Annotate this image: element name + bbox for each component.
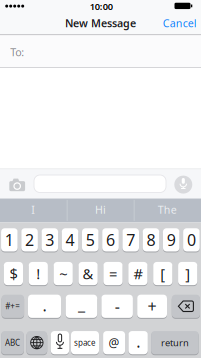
staticText: +	[148, 296, 157, 317]
button[interactable]: ABC	[1, 330, 24, 355]
button[interactable]: #	[128, 261, 147, 286]
staticText: return	[161, 336, 189, 349]
button[interactable]: 9	[163, 228, 179, 252]
staticText: I	[31, 202, 35, 217]
button[interactable]: 6	[102, 228, 119, 252]
button[interactable]: 0	[183, 228, 200, 252]
staticText: 8	[146, 229, 155, 250]
staticText: Cancel	[163, 16, 197, 30]
staticText: 0	[187, 229, 196, 250]
staticText: $	[9, 264, 17, 283]
button[interactable]: @	[103, 330, 125, 355]
staticText: .	[136, 331, 140, 352]
button[interactable]: 2	[21, 228, 38, 252]
staticText: &	[83, 264, 94, 283]
button[interactable]: Dictate	[51, 330, 69, 355]
button[interactable]: Next keyboard	[26, 330, 47, 355]
staticText: -	[115, 296, 120, 317]
button[interactable]: [	[153, 261, 172, 286]
staticText: Hi	[95, 202, 106, 217]
staticText: 4	[65, 229, 74, 250]
staticText: .	[42, 295, 46, 316]
button[interactable]: 4	[62, 228, 78, 252]
button[interactable]: 1	[1, 228, 18, 252]
button[interactable]: 3	[41, 228, 58, 252]
staticText: #	[133, 264, 142, 283]
staticText: [	[160, 264, 165, 283]
button[interactable]: Cancel	[163, 16, 197, 30]
button[interactable]: -	[101, 294, 133, 318]
button[interactable]: space	[71, 330, 99, 355]
staticText: New Message	[65, 16, 136, 30]
staticText: To:	[10, 45, 24, 59]
staticText: =	[109, 264, 117, 283]
staticText: ]	[185, 264, 190, 283]
button[interactable]: _	[66, 294, 97, 318]
staticText: 2	[25, 229, 34, 250]
staticText: 5	[86, 229, 95, 250]
button[interactable]: +	[137, 294, 167, 318]
staticText: 7	[126, 229, 135, 250]
staticText: The	[158, 202, 177, 217]
button[interactable]: .	[28, 294, 61, 318]
staticText: 6	[106, 229, 115, 250]
staticText: @	[109, 335, 120, 351]
staticText: 3	[45, 229, 54, 250]
button[interactable]: 8	[143, 228, 159, 252]
button[interactable]: Delete	[172, 294, 200, 318]
button[interactable]: I	[1, 198, 65, 221]
staticText: !	[36, 264, 40, 283]
button[interactable]: ~	[54, 261, 73, 286]
staticText: 9	[167, 229, 176, 250]
staticText: #+=	[5, 301, 20, 311]
button[interactable]: #+=	[2, 294, 24, 318]
button[interactable]: Hi	[68, 198, 132, 221]
staticText: 10:00	[90, 0, 113, 13]
button[interactable]: Record audio message	[174, 175, 193, 194]
button[interactable]: The	[135, 198, 199, 221]
button[interactable]: =	[103, 261, 123, 286]
staticText: 1	[5, 229, 14, 250]
button[interactable]: $	[4, 261, 23, 286]
button[interactable]: 7	[122, 228, 139, 252]
button[interactable]: !	[29, 261, 48, 286]
staticText: ABC	[5, 337, 20, 348]
button[interactable]: .	[128, 330, 148, 355]
button[interactable]: ]	[178, 261, 197, 286]
staticText: _	[78, 294, 85, 315]
staticText: ~	[59, 264, 67, 283]
button[interactable]: Camera	[9, 178, 26, 192]
staticText: space	[74, 337, 96, 348]
button[interactable]: return	[151, 330, 199, 355]
button[interactable]: &	[78, 261, 98, 286]
button[interactable]: To:	[0, 35, 201, 67]
button[interactable]: 5	[82, 228, 99, 252]
